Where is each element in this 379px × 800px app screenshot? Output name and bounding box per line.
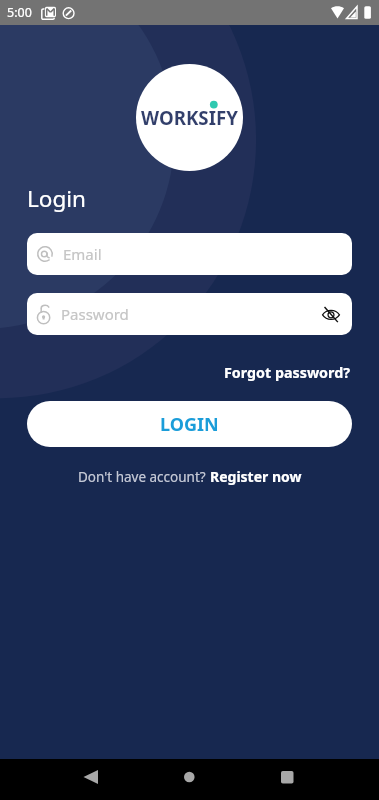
button[interactable]: Forgot password? <box>224 363 351 382</box>
staticText: 5:00 <box>7 4 32 21</box>
staticText: Email <box>63 244 102 264</box>
button[interactable]: Password <box>27 293 352 335</box>
button[interactable]: Register now <box>210 467 302 486</box>
staticText: WORKSIFY <box>141 105 238 130</box>
staticText: LOGIN <box>160 412 219 437</box>
staticText: Forgot password? <box>224 363 351 382</box>
staticText: Login <box>27 183 86 214</box>
staticText: Register now <box>210 467 302 486</box>
other: Show password <box>322 306 340 323</box>
button[interactable]: Email <box>27 233 352 275</box>
staticText: Password <box>61 304 129 324</box>
staticText: Don't have account? <box>78 468 210 486</box>
button[interactable]: LOGIN <box>27 401 352 447</box>
